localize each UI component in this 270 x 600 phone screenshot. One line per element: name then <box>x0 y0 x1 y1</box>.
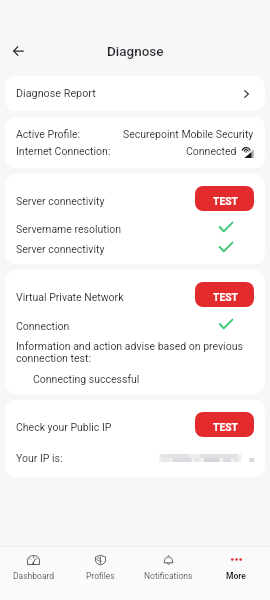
staticText: Connected <box>186 145 237 157</box>
staticText: Connecting successful <box>33 373 140 385</box>
staticText: Internet Connection: <box>16 145 111 157</box>
staticText: Securepoint Mobile Security <box>123 128 254 140</box>
staticText: Notifications <box>144 571 193 581</box>
staticText: More <box>226 571 246 581</box>
button[interactable]: TEST <box>195 412 254 437</box>
staticText: Profiles <box>86 571 115 581</box>
button[interactable]: Profiles <box>67 547 134 588</box>
staticText: TEST <box>213 195 238 207</box>
staticText: Information and action advise based on p… <box>16 340 260 365</box>
button[interactable]: Dashboard <box>0 547 67 588</box>
staticText: TEST <box>213 421 238 433</box>
staticText: Server connectivity <box>16 195 105 207</box>
button[interactable]: Diagnose Report <box>5 76 265 111</box>
button[interactable]: TEST <box>195 186 254 211</box>
staticText: Diagnose Report <box>16 87 96 100</box>
staticText: Dashboard <box>13 571 55 581</box>
button[interactable]: TEST <box>195 282 254 307</box>
staticText: Check your Public IP <box>16 421 112 433</box>
button[interactable]: Notifications <box>134 547 202 588</box>
staticText: Server connectivity <box>16 243 105 255</box>
staticText: Active Profile: <box>16 128 81 140</box>
button[interactable]: Back <box>2 35 34 67</box>
staticText: Virtual Private Network <box>16 291 124 303</box>
staticText: Servername resolution <box>16 223 122 235</box>
button[interactable]: More <box>202 547 270 588</box>
staticText: Connection <box>16 320 70 332</box>
staticText: TEST <box>213 291 238 303</box>
staticText: Diagnose <box>107 43 164 59</box>
staticText: Your IP is: <box>16 452 63 464</box>
